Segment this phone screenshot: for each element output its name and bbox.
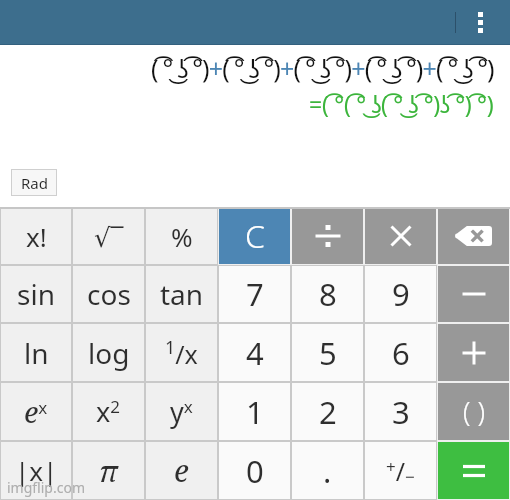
button[interactable] [437, 441, 510, 500]
staticText: x! [26, 219, 47, 254]
button[interactable]: tan [145, 265, 218, 323]
button[interactable]: π [72, 441, 145, 500]
button[interactable]: 7 [218, 265, 291, 323]
button[interactable] [437, 265, 510, 323]
staticText: ( ) [463, 393, 485, 430]
button[interactable]: 0 [218, 441, 291, 500]
staticText: 0 [246, 450, 264, 492]
button[interactable]: 1/x [145, 323, 218, 382]
button[interactable]: C [218, 207, 291, 265]
button[interactable]: % [145, 207, 218, 265]
button[interactable] [437, 207, 510, 265]
staticText: 1/x [165, 335, 198, 371]
staticText: ln [24, 334, 49, 372]
staticText: . [323, 450, 332, 492]
button[interactable]: x! [0, 207, 72, 265]
staticText: e [174, 450, 189, 491]
staticText: x2 [96, 393, 121, 430]
button[interactable] [364, 207, 437, 265]
staticText: 4 [246, 332, 264, 374]
button[interactable]: 8 [291, 265, 364, 323]
staticText: sin [17, 275, 55, 313]
button[interactable] [291, 207, 364, 265]
button[interactable]: +/− [364, 441, 437, 500]
staticText: 7 [246, 273, 264, 315]
staticText: |x| [15, 453, 58, 488]
button[interactable]: 2 [291, 382, 364, 441]
staticText: 2 [319, 391, 337, 433]
button[interactable]: ex [0, 382, 72, 441]
button[interactable]: log [72, 323, 145, 382]
button[interactable]: √‾ [72, 207, 145, 265]
staticText: 1 [246, 391, 264, 433]
button[interactable]: ln [0, 323, 72, 382]
staticText: ( ͡° ͜ʖ ͡°)+( ͡° ͜ʖ ͡°)+( ͡° ͜ʖ ͡°)+( ͡°… [151, 51, 494, 85]
button[interactable]: . [291, 441, 364, 500]
button[interactable]: Rad [11, 169, 57, 196]
staticText: tan [160, 275, 204, 313]
staticText: √‾ [94, 219, 124, 254]
button[interactable]: sin [0, 265, 72, 323]
staticText: yx [170, 393, 193, 430]
button[interactable] [437, 323, 510, 382]
button[interactable]: 9 [364, 265, 437, 323]
button[interactable]: 5 [291, 323, 364, 382]
staticText: C [245, 214, 265, 258]
button[interactable]: |x| [0, 441, 72, 500]
button[interactable]: 6 [364, 323, 437, 382]
staticText: imgflip.com [7, 478, 85, 497]
button[interactable]: x2 [72, 382, 145, 441]
staticText: Rad [21, 173, 48, 193]
staticText: 5 [319, 332, 337, 374]
staticText: 6 [392, 332, 410, 374]
button[interactable]: 4 [218, 323, 291, 382]
staticText: 3 [392, 391, 410, 433]
staticText: =( ͡°( ͡° ͜ʖ( ͡° ͜ʖ ͡°)ʖ ͡°) ͡°) [309, 88, 494, 119]
button[interactable]: e [145, 441, 218, 500]
staticText: log [88, 334, 130, 372]
button[interactable]: yx [145, 382, 218, 441]
button[interactable]: ( ) [437, 382, 510, 441]
button[interactable]: 3 [364, 382, 437, 441]
staticText: cos [87, 275, 131, 313]
staticText: 8 [319, 273, 337, 315]
staticText: π [99, 451, 118, 490]
staticText: % [171, 219, 193, 254]
button[interactable]: cos [72, 265, 145, 323]
staticText: ex [24, 392, 48, 431]
staticText: +/− [386, 454, 415, 488]
button[interactable] [478, 12, 483, 33]
staticText: 9 [392, 273, 410, 315]
button[interactable]: 1 [218, 382, 291, 441]
